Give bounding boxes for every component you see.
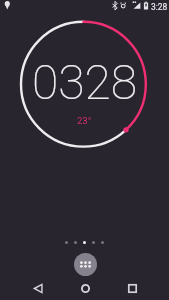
- button[interactable]: Recent apps: [122, 277, 143, 300]
- staticText: 23°: [77, 115, 92, 126]
- staticText: 0328: [32, 54, 138, 110]
- staticText: 3:28: [151, 2, 168, 12]
- button[interactable]: Home: [75, 277, 96, 300]
- button[interactable]: Back: [28, 277, 49, 300]
- button[interactable]: All apps: [74, 253, 97, 276]
